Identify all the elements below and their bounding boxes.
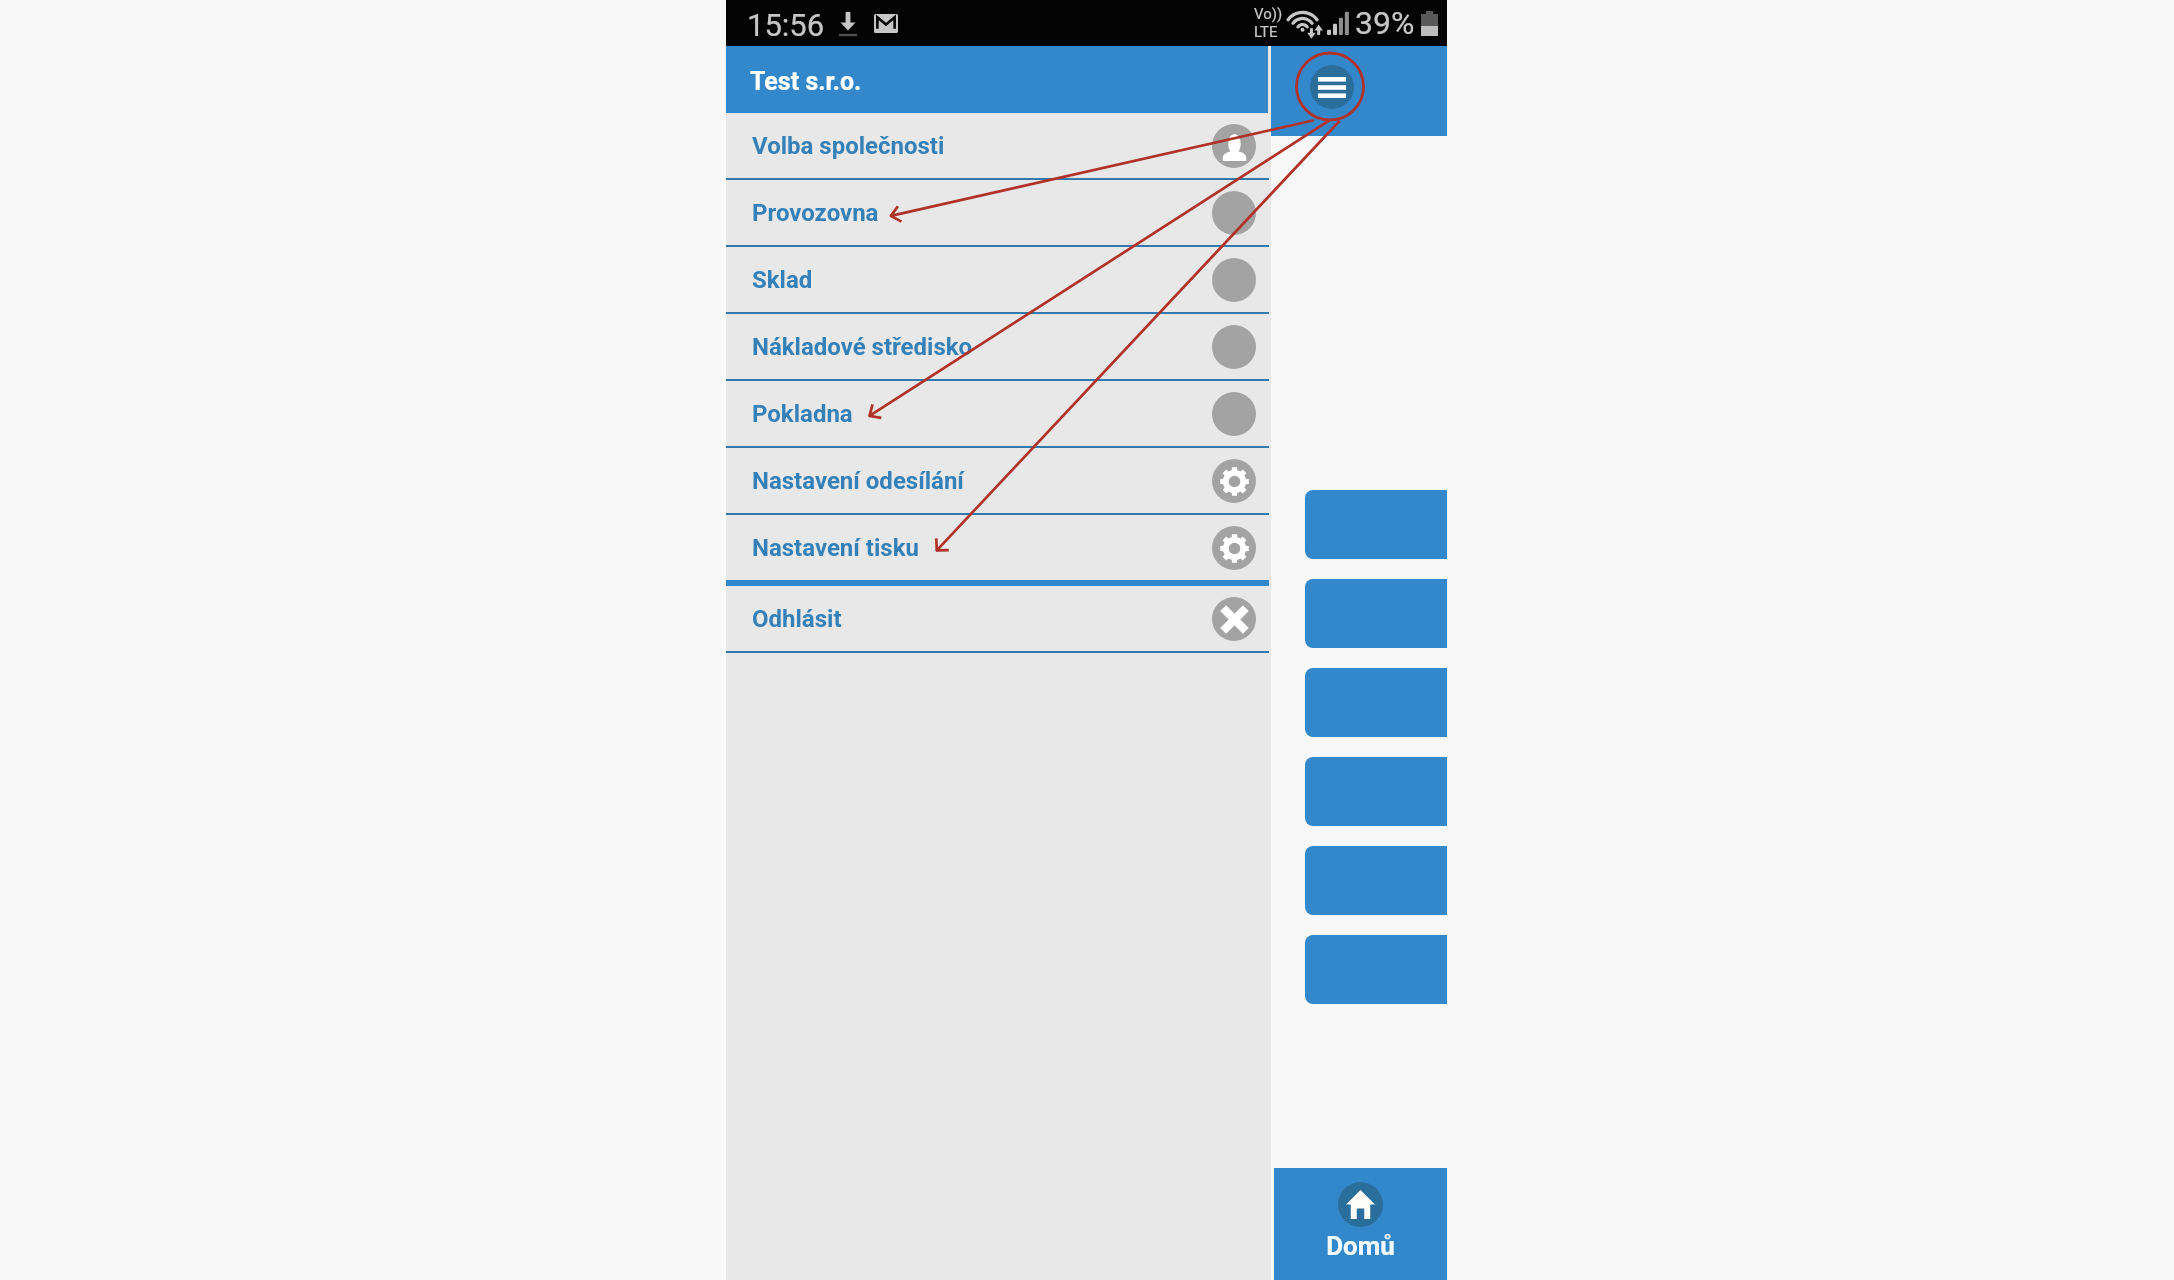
staticText: Test s.r.o.: [750, 67, 862, 96]
staticText: LTE: [1254, 23, 1278, 41]
button[interactable]: Nastavení odesílání: [726, 448, 1271, 513]
button[interactable]: Action button 2: [1305, 579, 1447, 648]
button[interactable]: Nákladové středisko: [726, 314, 1271, 379]
staticText: Domů: [1326, 1231, 1395, 1261]
button[interactable]: Sklad: [726, 247, 1271, 312]
button[interactable]: Provozovna: [726, 180, 1271, 245]
staticText: Nákladové středisko: [752, 333, 973, 361]
staticText: Provozovna: [752, 199, 879, 227]
button[interactable]: Volba společnosti: [726, 113, 1271, 178]
staticText: Pokladna: [752, 400, 853, 428]
button[interactable]: Nastavení tisku: [726, 515, 1271, 580]
button[interactable]: Action button 1: [1305, 490, 1447, 559]
button[interactable]: Pokladna: [726, 381, 1271, 446]
staticText: Nastavení odesílání: [752, 467, 964, 495]
button[interactable]: Open navigation menu: [1310, 65, 1354, 109]
button[interactable]: Action button 3: [1305, 668, 1447, 737]
button[interactable]: Action button 5: [1305, 846, 1447, 915]
staticText: Sklad: [752, 266, 813, 294]
staticText: Vo)): [1254, 5, 1283, 23]
staticText: 39%: [1355, 4, 1415, 42]
staticText: Volba společnosti: [752, 132, 945, 160]
button[interactable]: Action button 4: [1305, 757, 1447, 826]
staticText: 15:56: [747, 7, 825, 43]
button[interactable]: Domů: [1274, 1168, 1447, 1280]
button[interactable]: Odhlásit: [726, 586, 1271, 651]
staticText: Nastavení tisku: [752, 534, 919, 562]
staticText: Odhlásit: [752, 605, 842, 633]
button[interactable]: Action button 6: [1305, 935, 1447, 1004]
